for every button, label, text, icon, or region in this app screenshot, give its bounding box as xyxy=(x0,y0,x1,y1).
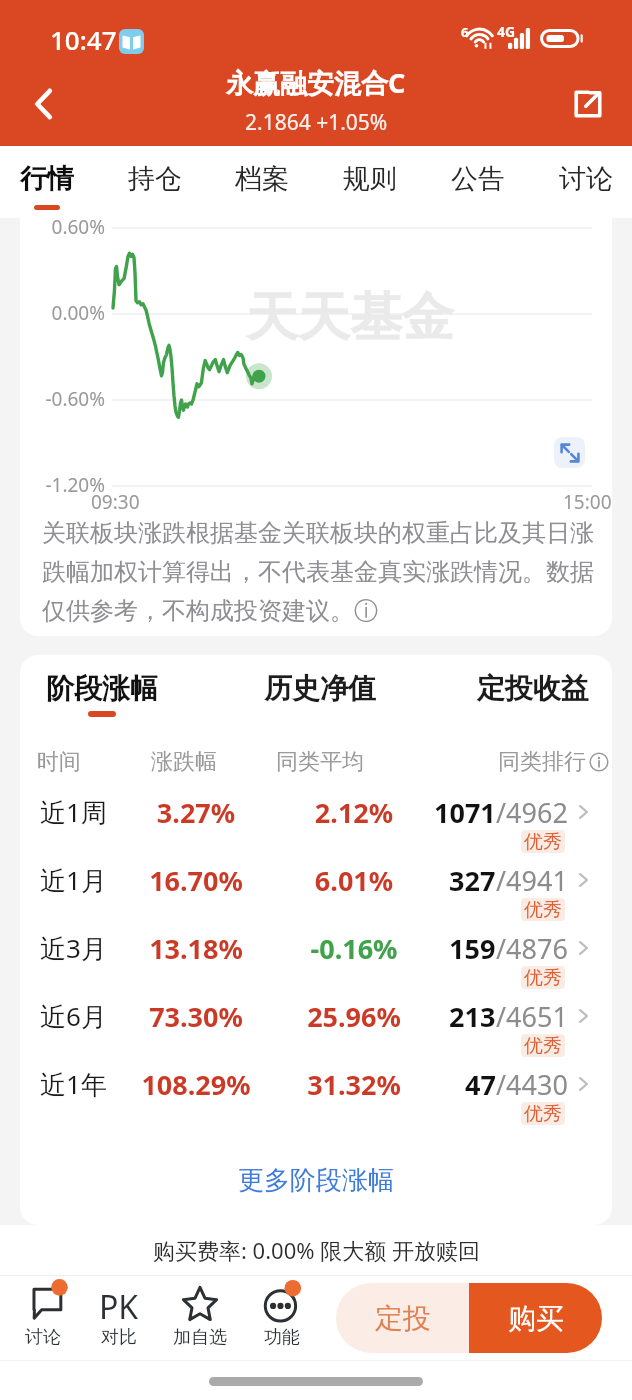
staticText: 327 xyxy=(449,862,496,899)
staticText: 购买 xyxy=(508,1301,564,1336)
staticText: 15:00 xyxy=(563,489,612,515)
button[interactable]: 规则 xyxy=(316,146,424,218)
button[interactable]: 近6月 xyxy=(20,982,612,1050)
staticText: 行情 xyxy=(20,162,74,196)
staticText: 108.29% xyxy=(116,1066,276,1103)
staticText: 公告 xyxy=(451,162,505,196)
button[interactable]: 近1月 xyxy=(20,846,612,914)
staticText: 2.1864 +1.05% xyxy=(245,108,388,137)
staticText: 2.12% xyxy=(269,794,439,831)
staticText: 历史净值 xyxy=(264,671,376,706)
staticText: 0.00% xyxy=(20,300,105,326)
staticText: /4876 xyxy=(496,930,568,967)
button[interactable]: 公告 xyxy=(424,146,532,218)
button[interactable]: Share xyxy=(553,62,623,146)
staticText: 09:30 xyxy=(91,489,140,515)
staticText: 涨跌幅 xyxy=(114,748,254,776)
staticText: 时间 xyxy=(37,748,81,776)
button[interactable]: 定投收益 xyxy=(475,671,591,717)
staticText: 10:47 xyxy=(50,22,117,57)
staticText: 6 xyxy=(461,23,469,41)
button[interactable]: 讨论 xyxy=(3,1276,83,1360)
staticText: PK xyxy=(99,1285,139,1321)
staticText: 6.01% xyxy=(269,862,439,899)
staticText: 优秀 xyxy=(524,1034,562,1057)
staticText: 同类排行 xyxy=(498,748,586,776)
button[interactable]: 购买 xyxy=(469,1283,602,1353)
staticText: 47 xyxy=(465,1066,496,1103)
staticText: 16.70% xyxy=(116,862,276,899)
staticText: 近1周 xyxy=(40,794,107,830)
staticText: 关联板块涨跌根据基金关联板块的权重占比及其日涨跌幅加权计算得出，不代表基金真实涨… xyxy=(42,518,598,626)
staticText: 优秀 xyxy=(524,966,562,989)
button[interactable]: 讨论 xyxy=(532,146,632,218)
button[interactable]: 定投 xyxy=(336,1283,469,1353)
staticText: 31.32% xyxy=(269,1066,439,1103)
staticText: 档案 xyxy=(235,162,289,196)
staticText: 4G xyxy=(497,22,516,41)
staticText: 优秀 xyxy=(524,1102,562,1125)
staticText: 阶段涨幅 xyxy=(46,671,158,706)
staticText: 天天基金 xyxy=(246,285,454,351)
staticText: 优秀 xyxy=(524,898,562,921)
staticText: 0.60% xyxy=(20,218,105,240)
staticText: 159 xyxy=(449,930,496,967)
staticText: 近6月 xyxy=(40,998,107,1034)
staticText: 持仓 xyxy=(128,162,182,196)
button[interactable]: 档案 xyxy=(208,146,316,218)
staticText: /4651 xyxy=(496,998,568,1035)
button[interactable]: 持仓 xyxy=(101,146,209,218)
button[interactable]: Back xyxy=(8,62,78,146)
staticText: 对比 xyxy=(101,1326,137,1349)
staticText: 13.18% xyxy=(116,930,276,967)
staticText: 同类平均 xyxy=(240,748,400,776)
staticText: 永赢融安混合C xyxy=(226,64,406,101)
staticText: 加自选 xyxy=(173,1326,227,1349)
staticText: 定投收益 xyxy=(477,671,589,706)
button[interactable]: 行情 xyxy=(0,146,101,218)
staticText: 近1月 xyxy=(40,862,107,898)
button[interactable]: 更多阶段涨幅 xyxy=(20,1152,612,1208)
staticText: -0.60% xyxy=(20,386,105,412)
button[interactable]: 历史净值 xyxy=(262,671,378,717)
staticText: -0.16% xyxy=(269,930,439,967)
staticText: 213 xyxy=(449,998,496,1035)
button[interactable]: 近3月 xyxy=(20,914,612,982)
staticText: 功能 xyxy=(264,1326,300,1349)
staticText: 规则 xyxy=(343,162,397,196)
staticText: /4430 xyxy=(496,1066,568,1103)
button[interactable]: Expand chart xyxy=(554,437,585,468)
staticText: -1.20% xyxy=(20,472,105,498)
button[interactable]: PK xyxy=(79,1276,159,1360)
staticText: 1071 xyxy=(434,794,496,831)
staticText: 讨论 xyxy=(25,1326,61,1349)
staticText: 购买费率: 0.00% 限大额 开放赎回 xyxy=(153,1235,480,1265)
staticText: 更多阶段涨幅 xyxy=(238,1164,394,1197)
staticText: 定投 xyxy=(375,1301,431,1336)
staticText: /4941 xyxy=(496,862,568,899)
staticText: 25.96% xyxy=(269,998,439,1035)
staticText: 近1年 xyxy=(40,1066,107,1102)
button[interactable]: 阶段涨幅 xyxy=(44,671,160,717)
button[interactable]: 近1年 xyxy=(20,1050,612,1118)
staticText: 讨论 xyxy=(559,162,613,196)
button[interactable]: 功能 xyxy=(242,1276,322,1360)
staticText: /4962 xyxy=(496,794,568,831)
staticText: 近3月 xyxy=(40,930,107,966)
staticText: 73.30% xyxy=(116,998,276,1035)
staticText: 优秀 xyxy=(524,830,562,853)
button[interactable]: 加自选 xyxy=(160,1276,240,1360)
staticText: 3.27% xyxy=(116,794,276,831)
button[interactable]: 近1周 xyxy=(20,778,612,846)
